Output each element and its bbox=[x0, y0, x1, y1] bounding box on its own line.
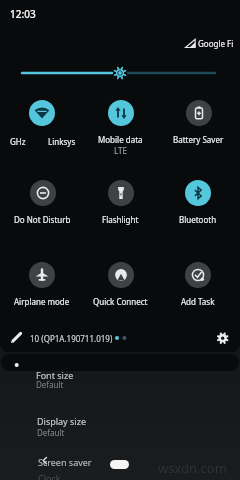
staticText: Airplane mode bbox=[14, 296, 70, 307]
button[interactable]: Airplane mode bbox=[2, 261, 82, 323]
staticText: Display size bbox=[37, 415, 86, 427]
staticText: Add Task bbox=[181, 296, 215, 307]
staticText: Default bbox=[36, 379, 64, 390]
staticText: GHz bbox=[10, 136, 26, 147]
button[interactable]: Flashlight bbox=[80, 179, 160, 241]
button[interactable]: Mobile data bbox=[80, 99, 160, 161]
button[interactable] bbox=[214, 329, 232, 347]
button[interactable]: Battery Saver bbox=[158, 99, 238, 161]
button[interactable]: Bluetooth bbox=[158, 179, 238, 241]
staticText: 12:03 bbox=[10, 7, 36, 21]
button[interactable] bbox=[8, 329, 26, 347]
staticText: Screen saver bbox=[38, 456, 92, 468]
staticText: 10 (QP1A.190711.019) bbox=[30, 333, 113, 344]
button[interactable] bbox=[110, 460, 129, 469]
staticText: Default bbox=[37, 427, 65, 438]
button[interactable]: Quick Connect bbox=[80, 261, 160, 323]
button[interactable] bbox=[2, 99, 82, 161]
staticText: Google Fi bbox=[198, 38, 234, 49]
staticText: wsxdn.com bbox=[158, 459, 227, 477]
staticText: Clock bbox=[38, 472, 61, 480]
staticText: Bluetooth bbox=[179, 214, 217, 225]
staticText: Flashlight bbox=[102, 214, 139, 225]
button[interactable]: Do Not Disturb bbox=[2, 179, 82, 241]
staticText: Font size bbox=[36, 369, 74, 381]
staticText: Battery Saver bbox=[173, 134, 224, 145]
staticText: LTE bbox=[114, 145, 127, 156]
staticText: Mobile data bbox=[98, 134, 143, 145]
staticText: Linksys bbox=[48, 136, 76, 147]
staticText: Do Not Disturb bbox=[14, 214, 71, 225]
staticText: Quick Connect bbox=[93, 296, 148, 307]
button[interactable]: Add Task bbox=[158, 261, 238, 323]
